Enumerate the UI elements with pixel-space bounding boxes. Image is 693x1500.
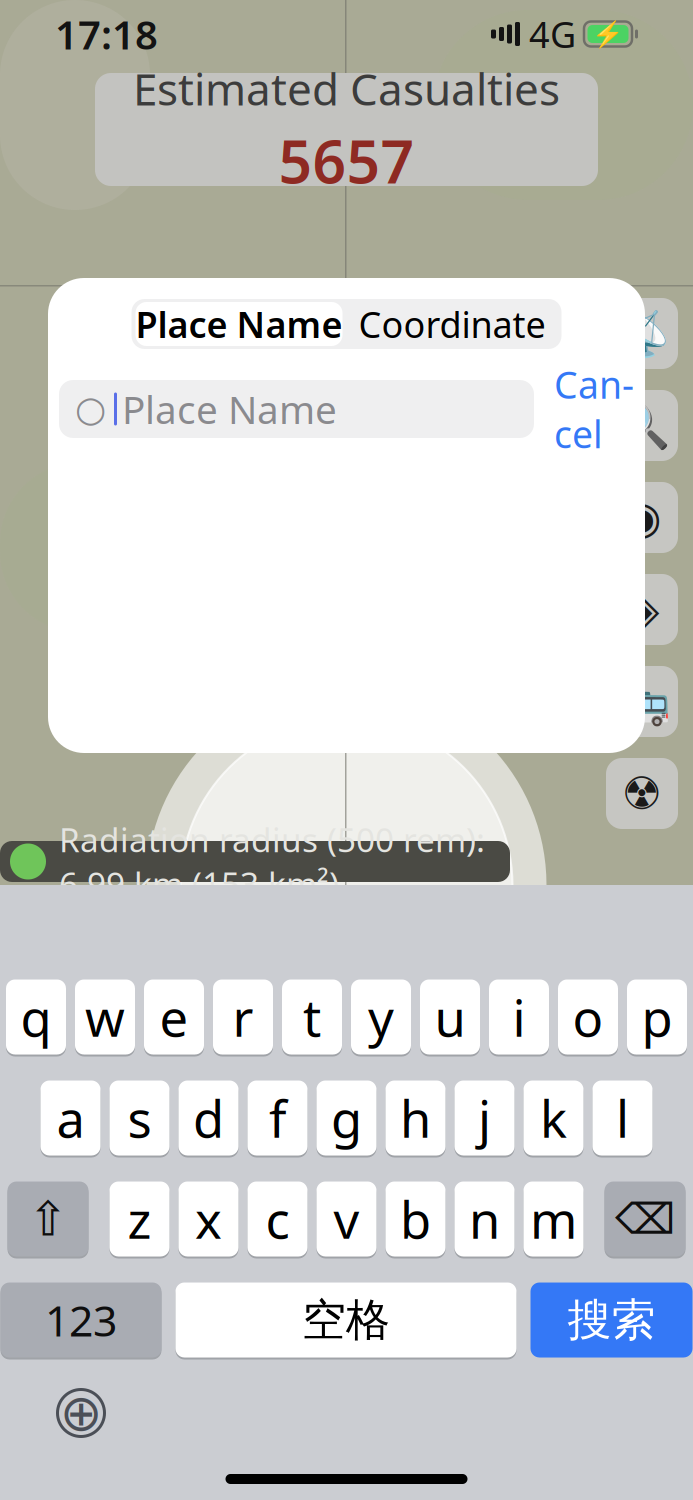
staticText: 4G (529, 10, 576, 58)
button[interactable]: Switch keyboard (54, 1386, 108, 1440)
staticText: ⇧ (28, 1192, 68, 1246)
staticText: m (530, 1185, 577, 1253)
staticText: k (540, 1084, 567, 1152)
staticText: c (265, 1185, 289, 1253)
staticText: ⌫ (615, 1195, 675, 1243)
staticText: 🔍 (614, 400, 670, 451)
button[interactable]: n (454, 1180, 514, 1258)
staticText: 搜索 (567, 1293, 655, 1347)
staticText: w (85, 983, 125, 1051)
staticText: Place Name (122, 383, 337, 435)
button[interactable]: Search (606, 390, 678, 461)
staticText: 🚌 (614, 676, 670, 727)
staticText: 5657 (278, 122, 414, 200)
staticText: g (331, 1084, 362, 1152)
button[interactable]: Shift (7, 1180, 88, 1258)
button[interactable]: b (385, 1180, 445, 1258)
button[interactable]: p (627, 978, 687, 1056)
staticText: p (641, 983, 672, 1051)
staticText: v (333, 1185, 359, 1253)
staticText: 123 (45, 1292, 117, 1348)
staticText: Coordinate (358, 300, 545, 348)
button[interactable]: 123 (0, 1281, 161, 1359)
staticText: ○ (75, 389, 106, 429)
button[interactable]: Delete (604, 1180, 685, 1258)
button[interactable]: Cancel (554, 380, 634, 438)
staticText: x (195, 1185, 222, 1253)
staticText: t (303, 983, 321, 1051)
staticText: f (269, 1084, 286, 1152)
button[interactable]: o (558, 978, 618, 1056)
button[interactable]: v (316, 1180, 376, 1258)
button[interactable]: m (523, 1180, 583, 1258)
button[interactable]: s (109, 1079, 169, 1157)
button[interactable]: 搜索 (530, 1281, 692, 1359)
staticText: l (616, 1084, 629, 1152)
staticText: e (159, 983, 188, 1051)
staticText: q (20, 983, 51, 1051)
staticText: 空格 (302, 1293, 390, 1347)
button[interactable]: Place Name (133, 299, 344, 349)
staticText: Place Name (135, 300, 342, 348)
button[interactable]: y (351, 978, 411, 1056)
button[interactable]: j (454, 1079, 514, 1157)
button[interactable]: h (385, 1079, 445, 1157)
button[interactable]: k (523, 1079, 583, 1157)
button[interactable]: c (247, 1180, 307, 1258)
button[interactable]: e (144, 978, 204, 1056)
staticText: ☢ (621, 768, 662, 819)
button[interactable]: t (282, 978, 342, 1056)
button[interactable]: d (178, 1079, 238, 1157)
staticText: i (512, 983, 525, 1051)
button[interactable]: r (213, 978, 273, 1056)
staticText: s (127, 1084, 151, 1152)
button[interactable]: q (6, 978, 66, 1056)
button[interactable]: Detonate (606, 298, 678, 369)
button[interactable]: Transit (606, 666, 678, 737)
staticText: ⊕ (60, 1384, 102, 1442)
staticText: r (232, 983, 253, 1051)
button[interactable]: Warhead (606, 758, 678, 829)
button[interactable]: 空格 (175, 1281, 516, 1359)
staticText: o (572, 983, 603, 1051)
staticText: a (56, 1084, 84, 1152)
staticText: j (478, 1084, 491, 1152)
staticText: ◉ (622, 492, 662, 543)
button[interactable]: u (420, 978, 480, 1056)
button[interactable]: l (592, 1079, 652, 1157)
staticText: z (127, 1185, 151, 1253)
button[interactable]: Layers (606, 574, 678, 645)
button[interactable]: Locate (606, 482, 678, 553)
staticText: ⚡ (592, 19, 624, 48)
staticText: n (469, 1185, 500, 1253)
staticText: 📡 (614, 308, 670, 359)
staticText: b (400, 1185, 431, 1253)
button[interactable]: z (109, 1180, 169, 1258)
staticText: h (400, 1084, 431, 1152)
staticText: 17:18 (55, 7, 158, 60)
button[interactable]: a (40, 1079, 100, 1157)
button[interactable]: i (489, 978, 549, 1056)
staticText: d (193, 1084, 224, 1152)
button[interactable]: Coordinate (344, 299, 559, 349)
button[interactable]: x (178, 1180, 238, 1258)
button[interactable]: f (247, 1079, 307, 1157)
staticText: Estimated Casualties (133, 59, 560, 118)
staticText: ◈ (624, 584, 659, 635)
button[interactable]: w (75, 978, 135, 1056)
button[interactable]: g (316, 1079, 376, 1157)
staticText: Cancel (554, 359, 634, 459)
staticText: y (368, 983, 394, 1051)
staticText: Radiation radius (500 rem): 6.99 km (153… (59, 817, 485, 906)
staticText: u (434, 983, 465, 1051)
